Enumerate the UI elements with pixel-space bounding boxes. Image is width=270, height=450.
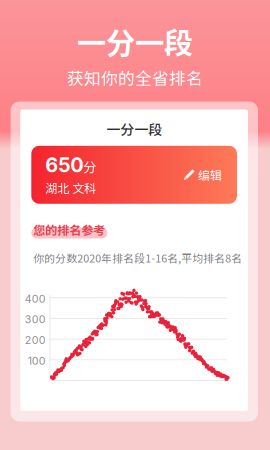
staticText: 300 [25, 313, 46, 326]
staticText: 650 [45, 153, 83, 177]
button[interactable]: 编辑 [179, 161, 226, 188]
staticText: 200 [25, 334, 46, 347]
staticText: 400 [25, 292, 46, 305]
staticText: 您的排名参考 [33, 221, 105, 238]
staticText: 一分一段 [77, 20, 193, 62]
staticText: 编辑 [198, 166, 222, 183]
staticText: 你的分数2020年排名段1-16名,平均排名8名 [33, 250, 242, 265]
staticText: 分 [83, 157, 96, 176]
staticText: 一分一段 [106, 118, 162, 139]
staticText: 获知你的全省排名 [67, 65, 203, 90]
staticText: 湖北 文科 [45, 179, 96, 197]
staticText: 100 [28, 354, 46, 367]
button[interactable]: 一分一段 [20, 109, 248, 144]
